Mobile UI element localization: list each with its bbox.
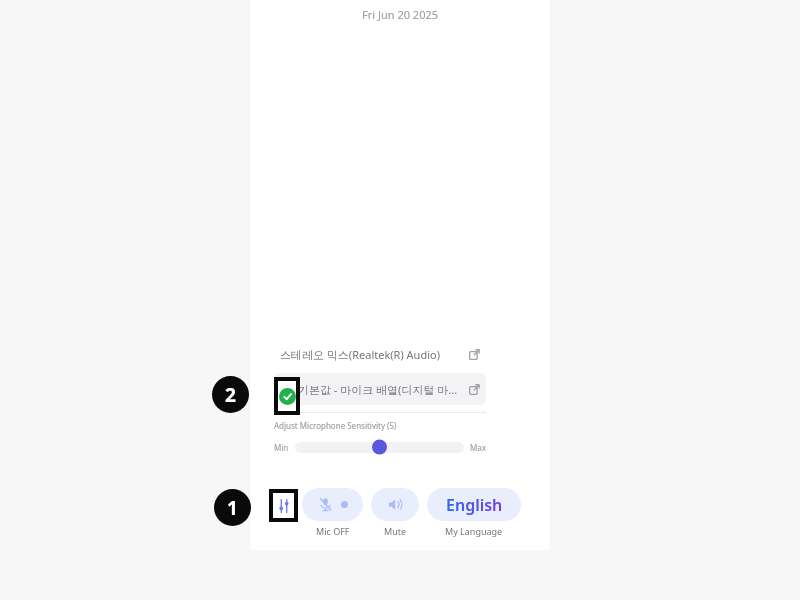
staticText: 스테레오 믹스(Realtek(R) Audio)	[280, 347, 469, 362]
staticText: Fri Jun 20 2025	[250, 7, 550, 22]
staticText: 기본값 - 마이크 배열(디지털 마...	[298, 382, 469, 397]
staticText: Max	[470, 442, 486, 453]
staticText: 2	[225, 382, 236, 408]
button[interactable]: English	[427, 488, 521, 521]
staticText: My Language	[445, 525, 503, 537]
staticText: Mic OFF	[316, 525, 350, 537]
button[interactable]: Adjust microphone settings	[266, 488, 294, 521]
button[interactable]: Microphone off	[302, 488, 363, 521]
button[interactable]	[295, 439, 464, 455]
staticText: 1	[227, 495, 238, 521]
button[interactable]: Mute	[371, 488, 419, 521]
staticText: Adjust Microphone Sensitivity (5)	[274, 420, 397, 431]
staticText: English	[446, 494, 503, 516]
button[interactable]: 기본값 - 마이크 배열(디지털 마...	[274, 373, 486, 405]
staticText: Min	[274, 442, 289, 453]
button[interactable]: 스테레오 믹스(Realtek(R) Audio)	[274, 338, 486, 370]
staticText: Mute	[384, 525, 407, 537]
